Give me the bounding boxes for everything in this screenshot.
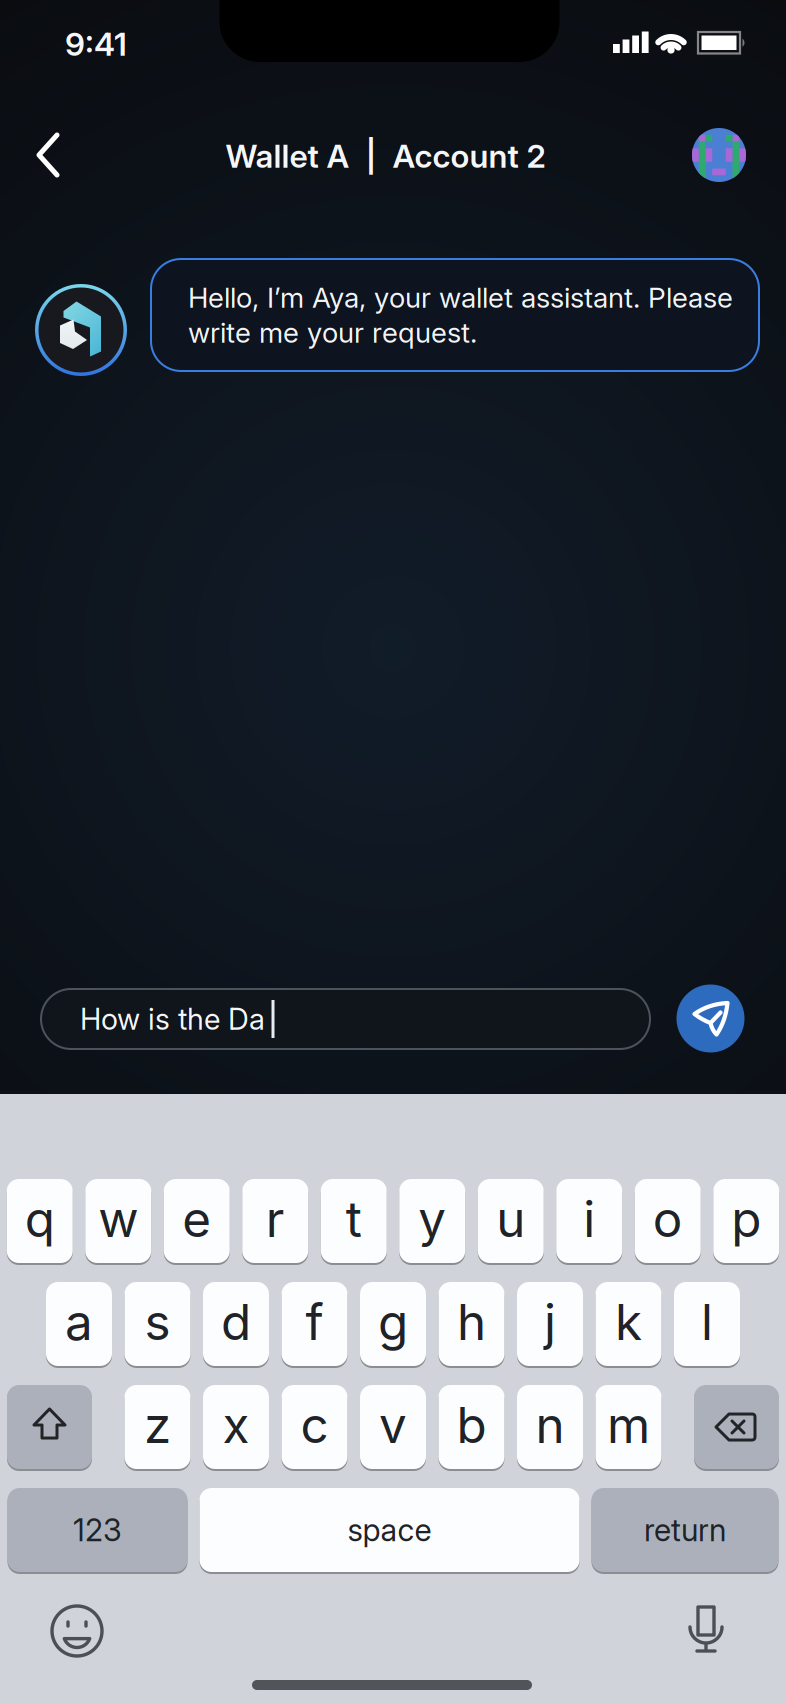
staticText: Wallet A | Account 2 bbox=[225, 137, 545, 175]
button[interactable]: r bbox=[242, 1179, 308, 1263]
button[interactable]: q bbox=[7, 1179, 73, 1263]
button[interactable]: v bbox=[360, 1385, 426, 1469]
button[interactable]: h bbox=[438, 1282, 504, 1366]
staticText: f bbox=[305, 1293, 323, 1351]
staticText: How is the Da bbox=[80, 1002, 265, 1036]
staticText: h bbox=[457, 1293, 486, 1351]
staticText: z bbox=[144, 1396, 171, 1454]
button[interactable]: l bbox=[674, 1282, 740, 1366]
button[interactable]: t bbox=[321, 1179, 387, 1263]
button[interactable]: k bbox=[595, 1282, 661, 1366]
button[interactable]: j bbox=[517, 1282, 583, 1366]
button[interactable]: s bbox=[124, 1282, 190, 1366]
button[interactable]: g bbox=[360, 1282, 426, 1366]
button[interactable]: Send bbox=[676, 984, 744, 1052]
button[interactable]: c bbox=[281, 1385, 347, 1469]
button[interactable]: Shift bbox=[7, 1385, 92, 1469]
staticText: space bbox=[347, 1512, 431, 1548]
staticText: 9:41 bbox=[65, 25, 127, 63]
button[interactable]: n bbox=[517, 1385, 583, 1469]
staticText: return bbox=[644, 1512, 726, 1548]
staticText: b bbox=[456, 1396, 486, 1454]
staticText: e bbox=[182, 1190, 211, 1248]
button[interactable]: Back bbox=[27, 123, 75, 187]
staticText: j bbox=[544, 1293, 556, 1351]
button[interactable]: e bbox=[164, 1179, 230, 1263]
button[interactable]: Dictate bbox=[676, 1601, 736, 1661]
staticText: m bbox=[607, 1396, 650, 1454]
button[interactable]: space bbox=[199, 1488, 579, 1572]
staticText: c bbox=[300, 1396, 328, 1454]
button[interactable]: Delete bbox=[694, 1385, 779, 1469]
button[interactable]: m bbox=[595, 1385, 661, 1469]
staticText: v bbox=[379, 1396, 407, 1454]
staticText: l bbox=[701, 1293, 713, 1351]
staticText: s bbox=[144, 1293, 170, 1351]
staticText: x bbox=[222, 1396, 249, 1454]
button[interactable]: d bbox=[203, 1282, 269, 1366]
staticText: r bbox=[266, 1190, 285, 1248]
staticText: y bbox=[418, 1190, 446, 1248]
staticText: u bbox=[496, 1190, 525, 1248]
button[interactable]: z bbox=[124, 1385, 190, 1469]
staticText: Hello, I’m Aya, your wallet assistant. P… bbox=[188, 281, 733, 349]
button[interactable]: i bbox=[556, 1179, 622, 1263]
button[interactable]: u bbox=[478, 1179, 544, 1263]
button[interactable]: a bbox=[46, 1282, 112, 1366]
button[interactable]: o bbox=[635, 1179, 701, 1263]
button[interactable]: w bbox=[85, 1179, 151, 1263]
button[interactable]: Emoji bbox=[47, 1601, 107, 1661]
staticText: o bbox=[653, 1190, 683, 1248]
button[interactable]: Message input bbox=[40, 988, 651, 1050]
staticText: t bbox=[346, 1190, 362, 1248]
staticText: a bbox=[65, 1293, 93, 1351]
staticText: d bbox=[221, 1293, 251, 1351]
staticText: i bbox=[583, 1190, 595, 1248]
button[interactable]: return bbox=[591, 1488, 778, 1572]
staticText: w bbox=[98, 1190, 138, 1248]
staticText: n bbox=[535, 1396, 564, 1454]
staticText: k bbox=[615, 1293, 642, 1351]
staticText: p bbox=[731, 1190, 761, 1248]
button[interactable]: f bbox=[281, 1282, 347, 1366]
staticText: q bbox=[25, 1190, 55, 1248]
button[interactable]: p bbox=[713, 1179, 779, 1263]
staticText: g bbox=[378, 1293, 408, 1351]
button[interactable]: Account avatar bbox=[692, 128, 746, 182]
button[interactable]: b bbox=[438, 1385, 504, 1469]
button[interactable]: 123 bbox=[7, 1488, 187, 1572]
staticText: 123 bbox=[73, 1512, 122, 1548]
button[interactable]: x bbox=[203, 1385, 269, 1469]
button[interactable]: y bbox=[399, 1179, 465, 1263]
